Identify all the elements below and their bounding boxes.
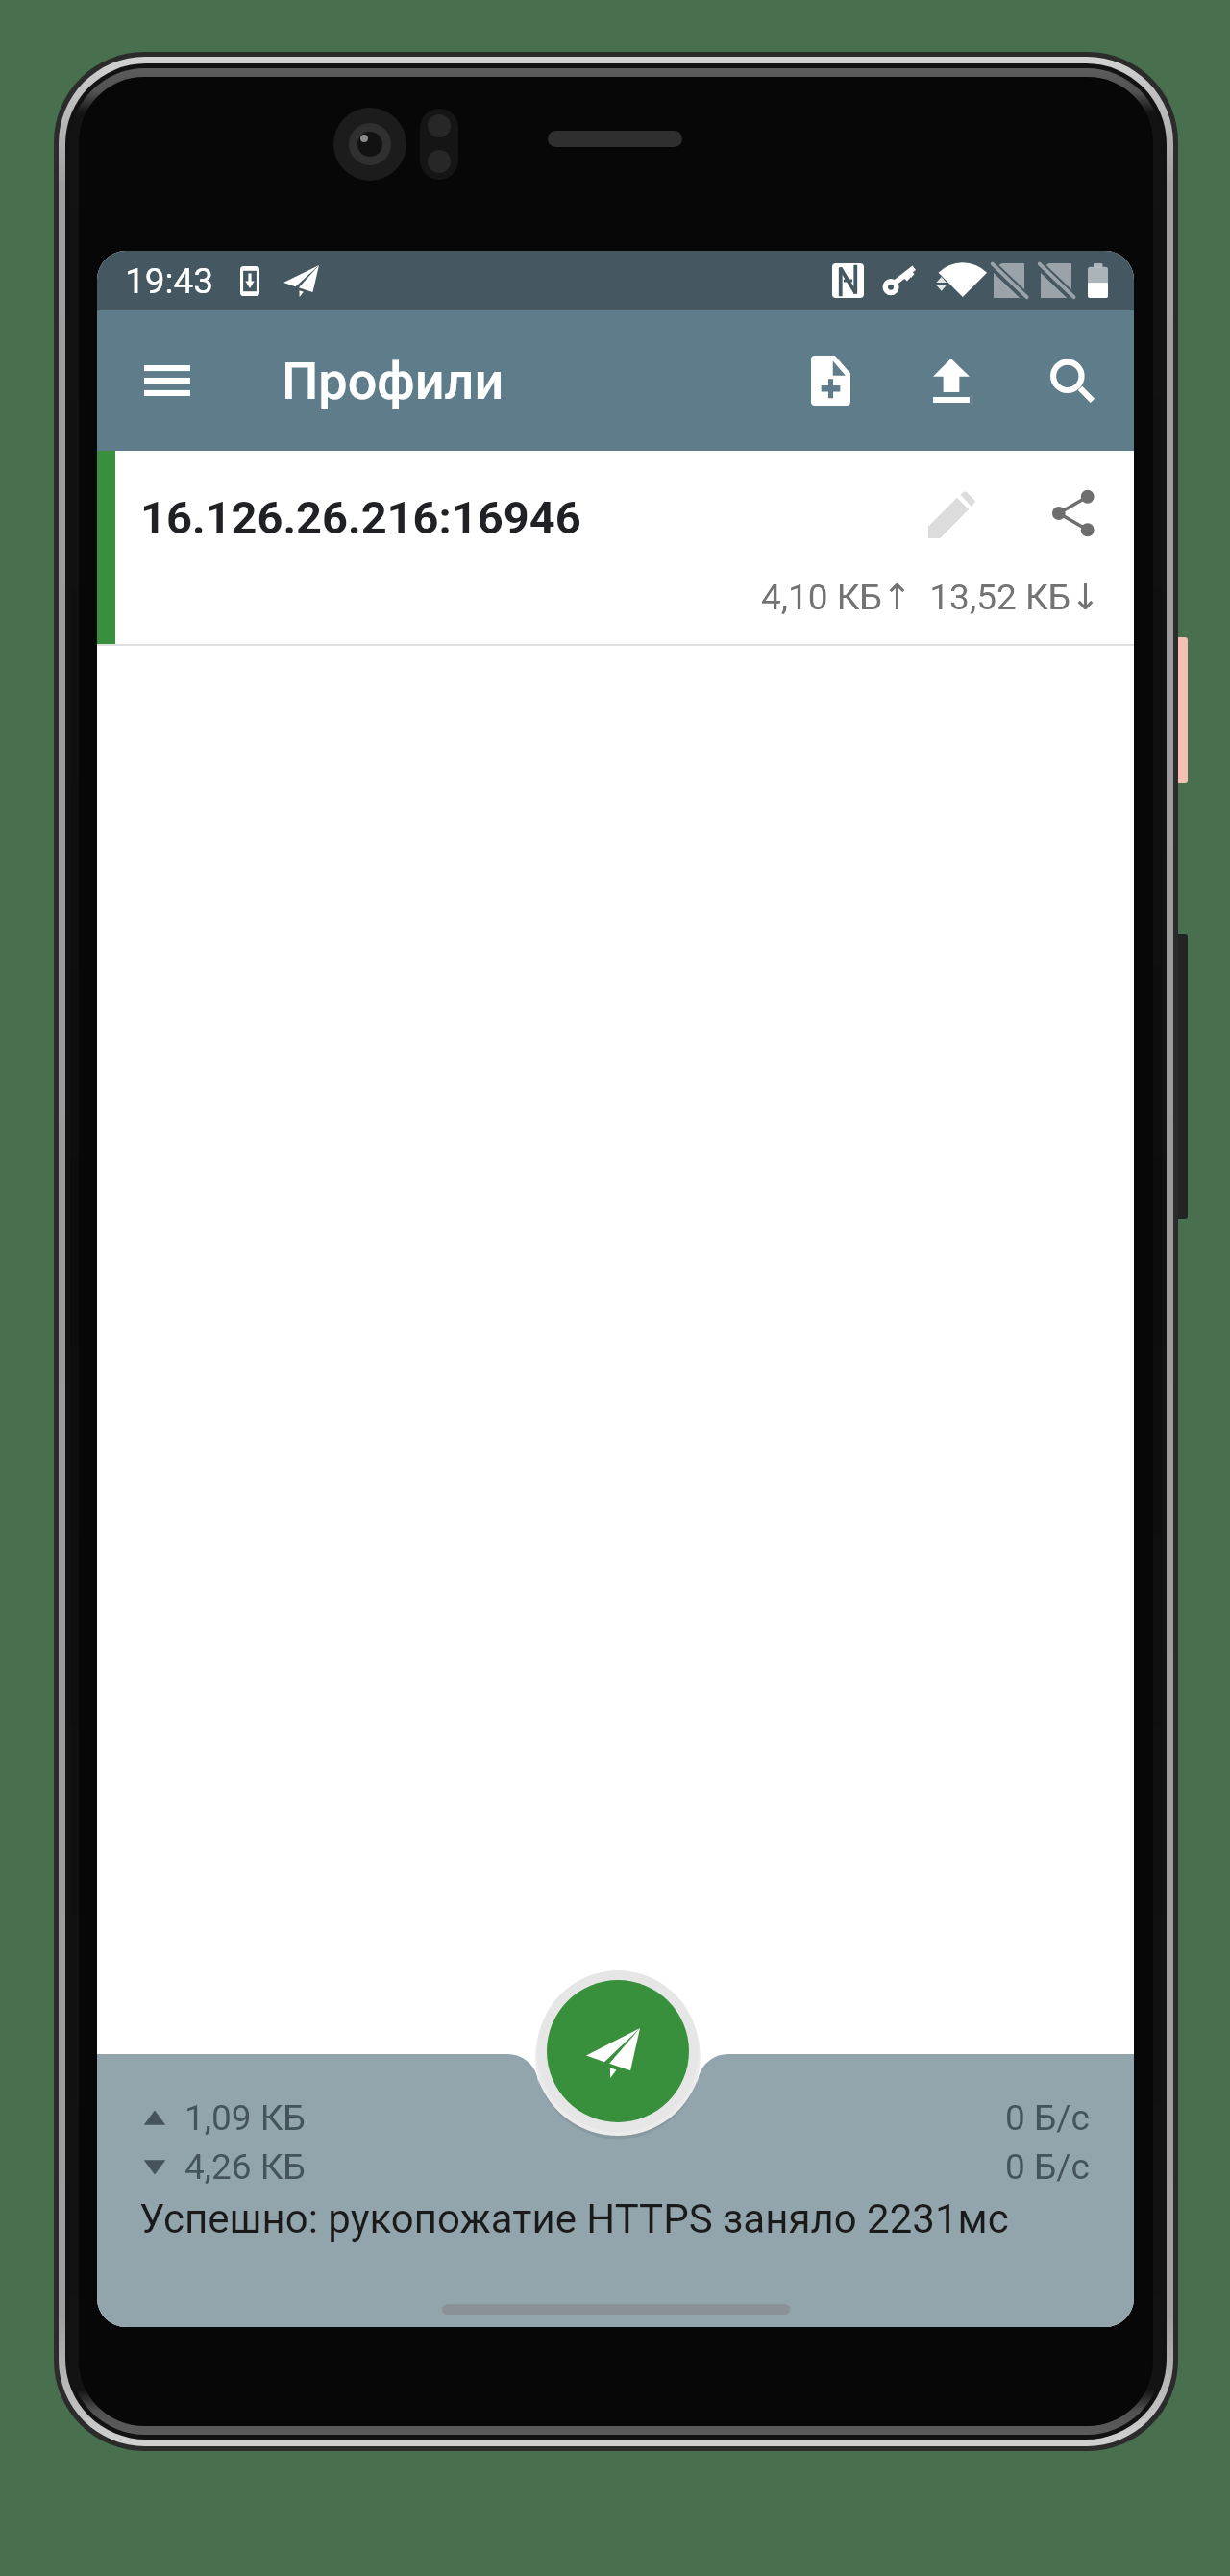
- button[interactable]: Edit: [903, 466, 999, 562]
- staticText: 16.126.26.216:16946: [140, 491, 581, 544]
- button[interactable]: Menu: [121, 334, 213, 427]
- staticText: 0 Б/с: [1005, 2146, 1090, 2188]
- button[interactable]: New profile: [780, 331, 880, 431]
- button[interactable]: Search: [1022, 331, 1122, 431]
- staticText: Успешно: рукопожатие HTTPS заняло 2231мс: [139, 2195, 1009, 2242]
- button[interactable]: 16.126.26.216:16946: [97, 451, 1134, 644]
- button[interactable]: Share: [1025, 465, 1121, 561]
- staticText: 19:43: [125, 260, 214, 302]
- button[interactable]: Connect: [547, 1980, 689, 2122]
- staticText: 4,10 КБ↑ 13,52 КБ↓: [761, 577, 1101, 618]
- staticText: Профили: [282, 351, 504, 411]
- staticText: 1,09 КБ: [184, 2097, 306, 2139]
- staticText: 0 Б/с: [1005, 2097, 1090, 2139]
- button[interactable]: Import: [901, 331, 1001, 431]
- staticText: 4,26 КБ: [184, 2146, 306, 2188]
